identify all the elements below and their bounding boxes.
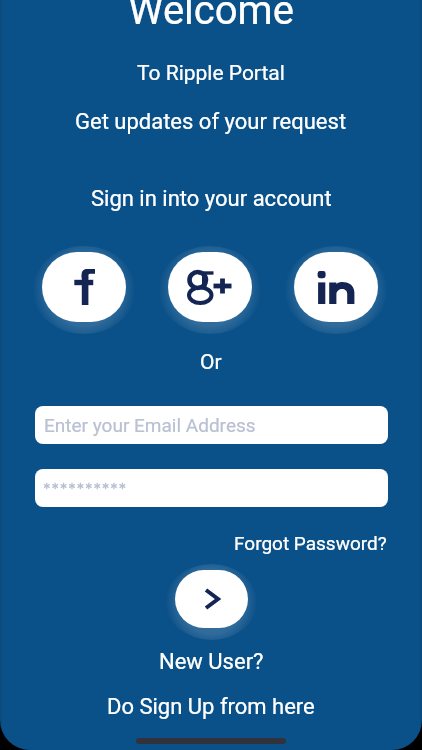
button[interactable]: Enter your Email Address: [35, 406, 388, 444]
staticText: Do Sign Up from here: [107, 694, 315, 720]
button[interactable]: Sign in with Facebook: [42, 252, 126, 322]
staticText: Sign in into your account: [91, 186, 332, 212]
button[interactable]: [35, 469, 388, 507]
staticText: Get updates of your request: [75, 109, 347, 135]
staticText: To Ripple Portal: [137, 61, 285, 86]
button[interactable]: Forgot Password?: [234, 532, 387, 554]
button[interactable]: Sign in with Google Plus: [168, 252, 252, 322]
button[interactable]: Sign in: [175, 570, 248, 628]
staticText: Welcome: [128, 0, 294, 34]
staticText: New User?: [159, 649, 264, 675]
staticText: Enter your Email Address: [44, 414, 256, 436]
staticText: Forgot Password?: [234, 532, 387, 554]
button[interactable]: Sign in with LinkedIn: [294, 252, 378, 322]
staticText: Or: [200, 350, 222, 375]
